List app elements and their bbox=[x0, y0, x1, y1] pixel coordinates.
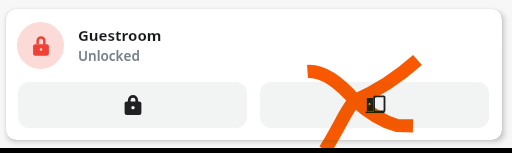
staticText: Unlocked bbox=[78, 47, 140, 65]
button[interactable]: Open door bbox=[260, 82, 489, 128]
button[interactable]: Lock bbox=[18, 82, 247, 128]
other: Open door bbox=[365, 95, 385, 115]
staticText: Guestroom bbox=[78, 25, 162, 45]
other: Lock bbox=[123, 95, 143, 115]
